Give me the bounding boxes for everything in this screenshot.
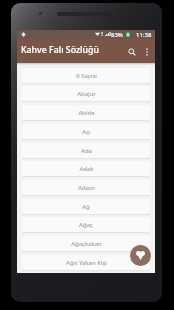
button[interactable]: Ağıt Yakan Kişi [22, 255, 150, 270]
staticText: Abide [78, 109, 95, 117]
button[interactable]: Favorites [130, 245, 151, 266]
button[interactable]: Abide [22, 105, 150, 120]
staticText: 83% [111, 31, 123, 39]
button[interactable]: Adam [22, 180, 150, 195]
staticText: Abajur [77, 90, 96, 98]
button[interactable]: 6 Sayısı [22, 68, 150, 83]
staticText: Adak [79, 165, 94, 173]
button[interactable]: Ağaçkakan [22, 236, 150, 251]
staticText: 6 Sayısı [76, 72, 97, 80]
staticText: Kahve Falı Sözlüğü [21, 44, 99, 56]
staticText: Ağ [82, 203, 90, 211]
button[interactable]: Ağaç [22, 217, 150, 232]
button[interactable]: Adak [22, 161, 150, 176]
button[interactable]: Abajur [22, 86, 150, 101]
button[interactable]: More options [140, 40, 154, 63]
staticText: Adam [78, 184, 95, 192]
staticText: 11:38 [136, 31, 152, 39]
button[interactable]: Search [124, 40, 140, 63]
staticText: Ağaç [79, 221, 93, 229]
staticText: Ağıt Yakan Kişi [66, 259, 107, 267]
staticText: Ada [81, 147, 92, 155]
staticText: Ağaçkakan [71, 240, 102, 248]
button[interactable]: Açı [22, 124, 150, 139]
button[interactable]: Ağ [22, 199, 150, 214]
staticText: Açı [82, 128, 91, 136]
button[interactable]: Ada [22, 143, 150, 158]
